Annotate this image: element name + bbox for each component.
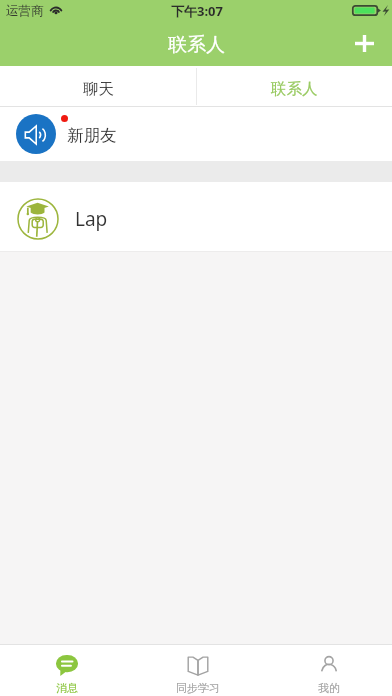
staticText: 消息 [56, 681, 78, 695]
button[interactable]: Lap [0, 182, 392, 251]
staticText: 我的 [318, 681, 340, 695]
staticText: 新朋友 [67, 125, 117, 146]
button[interactable]: Add contact [344, 23, 384, 63]
button[interactable]: 聊天 [0, 66, 196, 107]
button[interactable]: 联系人 [196, 66, 392, 107]
staticText: 联系人 [271, 79, 318, 99]
staticText: Lap [75, 206, 108, 232]
button[interactable]: 新朋友 [0, 107, 392, 161]
button[interactable]: 消息 [0, 644, 130, 696]
button[interactable]: 我的 [261, 644, 392, 696]
staticText: 同步学习 [176, 681, 220, 695]
staticText: 下午3:07 [171, 2, 223, 20]
staticText: 聊天 [83, 79, 114, 99]
button[interactable]: 同步学习 [130, 644, 261, 696]
staticText: 联系人 [168, 33, 225, 57]
staticText: 运营商 [6, 3, 44, 19]
